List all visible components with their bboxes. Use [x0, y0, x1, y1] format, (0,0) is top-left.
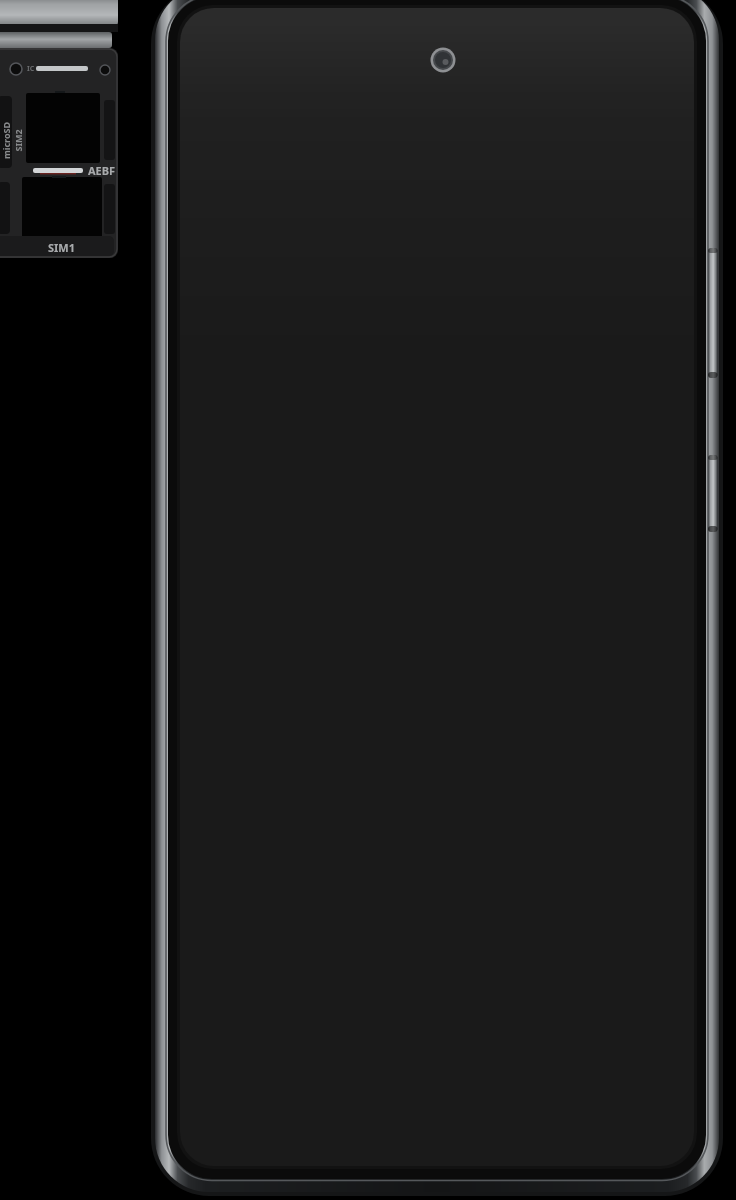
button[interactable]: Phone product photo with SIM tray	[0, 0, 736, 1200]
